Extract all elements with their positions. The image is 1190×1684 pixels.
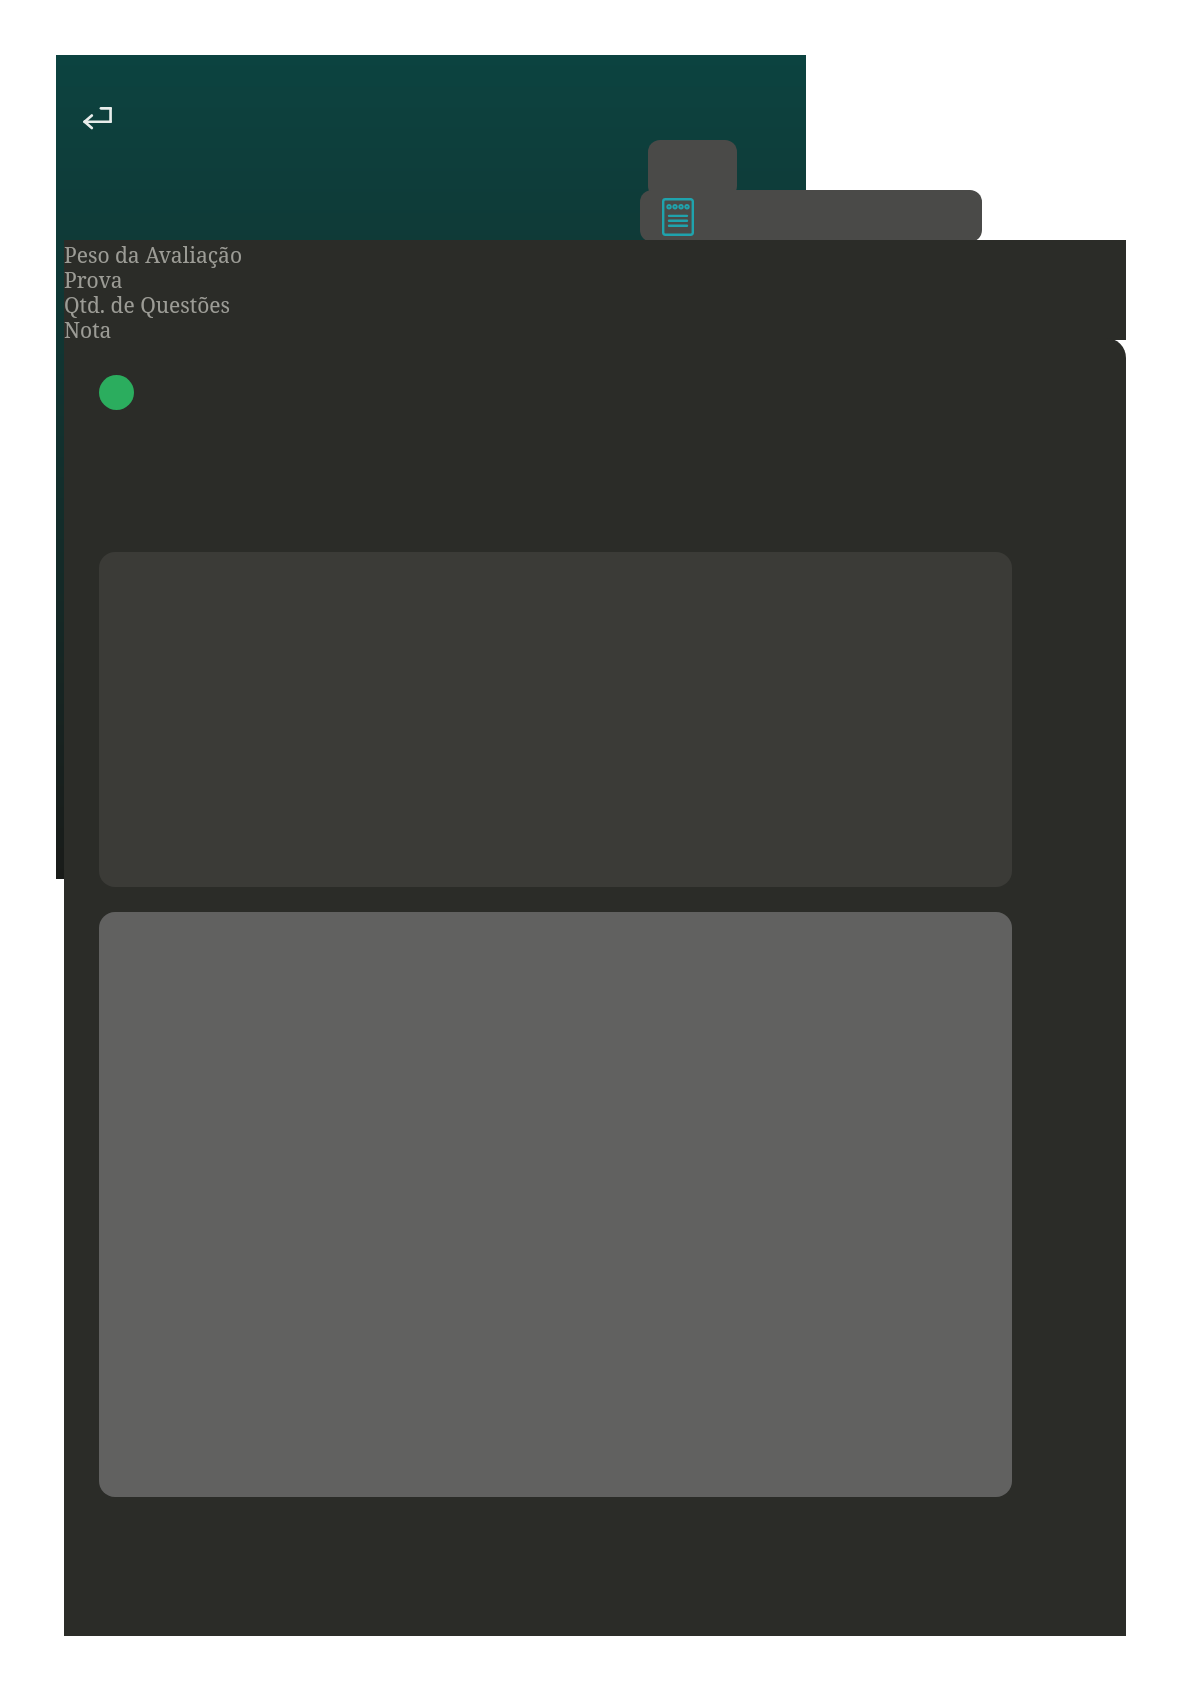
- staticText: Nota: [64, 316, 112, 345]
- staticText: Peso da Avaliação: [64, 241, 242, 270]
- button[interactable]: Detalhes da avaliação: [640, 190, 982, 242]
- button[interactable]: Status aprovado: [99, 375, 134, 410]
- staticText: Qtd. de Questões: [64, 291, 231, 320]
- staticText: Prova: [64, 266, 123, 295]
- button[interactable]: Opções: [648, 140, 737, 198]
- button[interactable]: Voltar: [76, 92, 124, 140]
